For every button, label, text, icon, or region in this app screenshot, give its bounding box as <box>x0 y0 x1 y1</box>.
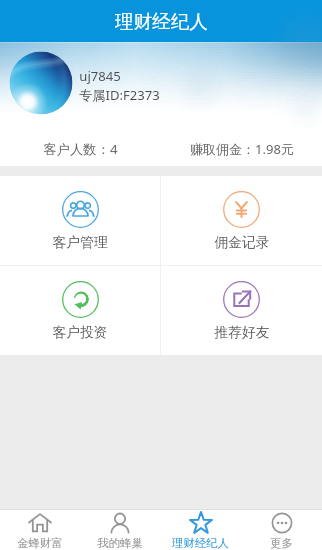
button[interactable]: 佣金记录 <box>161 176 322 265</box>
staticText: 金蜂财富 <box>17 536 63 550</box>
button[interactable]: 理财经纪人 <box>160 510 241 550</box>
staticText: 客户投资 <box>52 324 108 341</box>
staticText: 推荐好友 <box>214 324 270 341</box>
staticText: 赚取佣金：1.98元 <box>190 140 294 158</box>
button[interactable]: 我的蜂巢 <box>80 510 160 550</box>
staticText: 专属ID:F2373 <box>79 86 160 104</box>
button[interactable]: 客户管理 <box>0 176 160 265</box>
staticText: uj7845 <box>79 67 121 85</box>
staticText: 客户管理 <box>52 234 108 251</box>
staticText: 我的蜂巢 <box>97 536 143 550</box>
button[interactable]: 金蜂财富 <box>0 510 80 550</box>
button[interactable]: 更多 <box>241 510 322 550</box>
staticText: 理财经纪人 <box>172 536 229 550</box>
button[interactable]: 推荐好友 <box>161 266 322 355</box>
staticText: 佣金记录 <box>214 234 270 251</box>
button[interactable]: 客户投资 <box>0 266 160 355</box>
staticText: 更多 <box>270 536 293 550</box>
staticText: 客户人数：4 <box>43 140 118 158</box>
staticText: 理财经纪人 <box>115 10 208 33</box>
